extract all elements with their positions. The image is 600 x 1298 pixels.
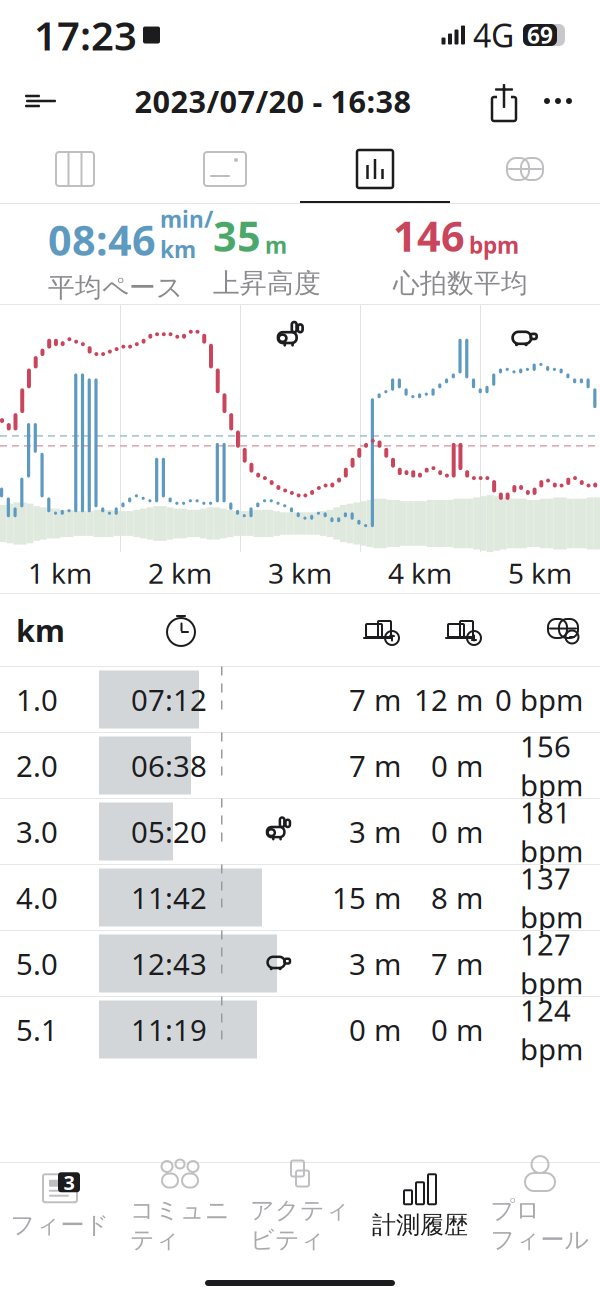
staticText: 08:46 <box>48 212 156 267</box>
staticText: 3 <box>63 1169 74 1196</box>
button[interactable]: Charts <box>300 134 450 204</box>
button[interactable]: Heart rate <box>450 134 600 204</box>
staticText: 0 m <box>431 1010 483 1049</box>
staticText: 137 bpm <box>520 858 583 936</box>
staticText: 124 bpm <box>520 990 583 1068</box>
staticText: 05:20 <box>131 812 207 851</box>
button[interactable]: Share <box>478 74 530 128</box>
staticText: 0 m <box>431 812 483 851</box>
staticText: 5 km <box>508 554 572 592</box>
staticText: 5.0 <box>16 944 58 983</box>
button[interactable]: プロフィール <box>480 1166 600 1242</box>
staticText: 上昇高度 <box>213 267 321 300</box>
staticText: 4.0 <box>16 878 58 917</box>
staticText: 0 m <box>349 1010 401 1049</box>
staticText: 7 m <box>431 944 483 983</box>
staticText: 3.0 <box>16 812 58 851</box>
staticText: 4G <box>473 14 514 56</box>
staticText: コミュニティ <box>130 1195 230 1254</box>
staticText: 1.0 <box>16 680 58 719</box>
staticText: 11:42 <box>131 878 207 917</box>
staticText: 2023/07/20 - 16:38 <box>134 81 411 121</box>
staticText: 17:23 <box>34 8 137 61</box>
staticText: 3 m <box>349 812 401 851</box>
staticText: 11:19 <box>131 1010 207 1049</box>
staticText: 2 km <box>148 554 212 592</box>
button[interactable]: 3 <box>0 1166 120 1242</box>
staticText: 0 m <box>431 746 483 785</box>
staticText: 平均ペース <box>48 271 183 304</box>
button[interactable]: 計測履歴 <box>360 1166 480 1242</box>
staticText: 8 m <box>431 878 483 917</box>
button[interactable]: コミュニティ <box>120 1166 240 1242</box>
staticText: 06:38 <box>131 746 207 785</box>
staticText: 5.1 <box>16 1010 58 1049</box>
staticText: 1 km <box>28 554 92 592</box>
staticText: アクティビティ <box>250 1195 350 1254</box>
staticText: 2.0 <box>16 746 58 785</box>
button[interactable]: Photos <box>150 134 300 204</box>
staticText: km <box>16 610 65 650</box>
staticText: 7 m <box>349 746 401 785</box>
staticText: 156 bpm <box>520 726 583 804</box>
button[interactable]: Map <box>0 134 150 204</box>
staticText: 3 m <box>349 944 401 983</box>
staticText: 12:43 <box>131 944 207 983</box>
staticText: 計測履歴 <box>372 1210 468 1240</box>
button[interactable]: Back <box>14 74 68 128</box>
staticText: 69 <box>527 20 553 50</box>
staticText: bpm <box>469 230 519 260</box>
staticText: 0 bpm <box>495 680 583 719</box>
staticText: フィード <box>10 1210 109 1240</box>
staticText: プロフィール <box>490 1195 589 1254</box>
staticText: 3 km <box>268 554 332 592</box>
staticText: 4 km <box>388 554 452 592</box>
staticText: 35 <box>213 208 261 263</box>
staticText: 127 bpm <box>520 924 583 1002</box>
staticText: 181 bpm <box>520 792 583 870</box>
staticText: 15 m <box>332 878 401 917</box>
staticText: 7 m <box>349 680 401 719</box>
staticText: 07:12 <box>131 680 207 719</box>
button[interactable]: More options <box>530 74 586 128</box>
staticText: 心拍数平均 <box>393 267 528 300</box>
staticText: min/km <box>160 204 213 264</box>
staticText: m <box>265 230 287 260</box>
staticText: 12 m <box>414 680 483 719</box>
button[interactable]: アクティビティ <box>240 1166 360 1242</box>
staticText: 146 <box>393 208 465 263</box>
